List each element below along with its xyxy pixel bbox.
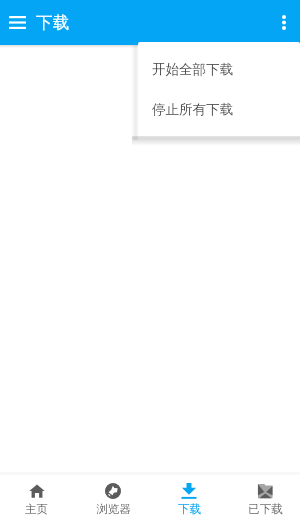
staticText: 浏览器 [96, 502, 131, 516]
button[interactable]: 下载 [151, 472, 227, 517]
staticText: 开始全部下载 [152, 61, 233, 78]
button[interactable]: More options [268, 0, 300, 45]
button[interactable]: Navigation menu [0, 0, 36, 45]
staticText: 下载 [36, 12, 69, 33]
button[interactable]: 开始全部下载 [138, 49, 300, 90]
staticText: 主页 [25, 502, 48, 516]
staticText: 下载 [178, 502, 201, 516]
button[interactable]: 已下载 [227, 472, 300, 517]
button[interactable]: 浏览器 [75, 472, 151, 517]
staticText: 已下载 [248, 502, 283, 516]
button[interactable]: 主页 [0, 472, 75, 517]
staticText: 停止所有下载 [152, 101, 233, 118]
button[interactable]: 停止所有下载 [138, 90, 300, 129]
